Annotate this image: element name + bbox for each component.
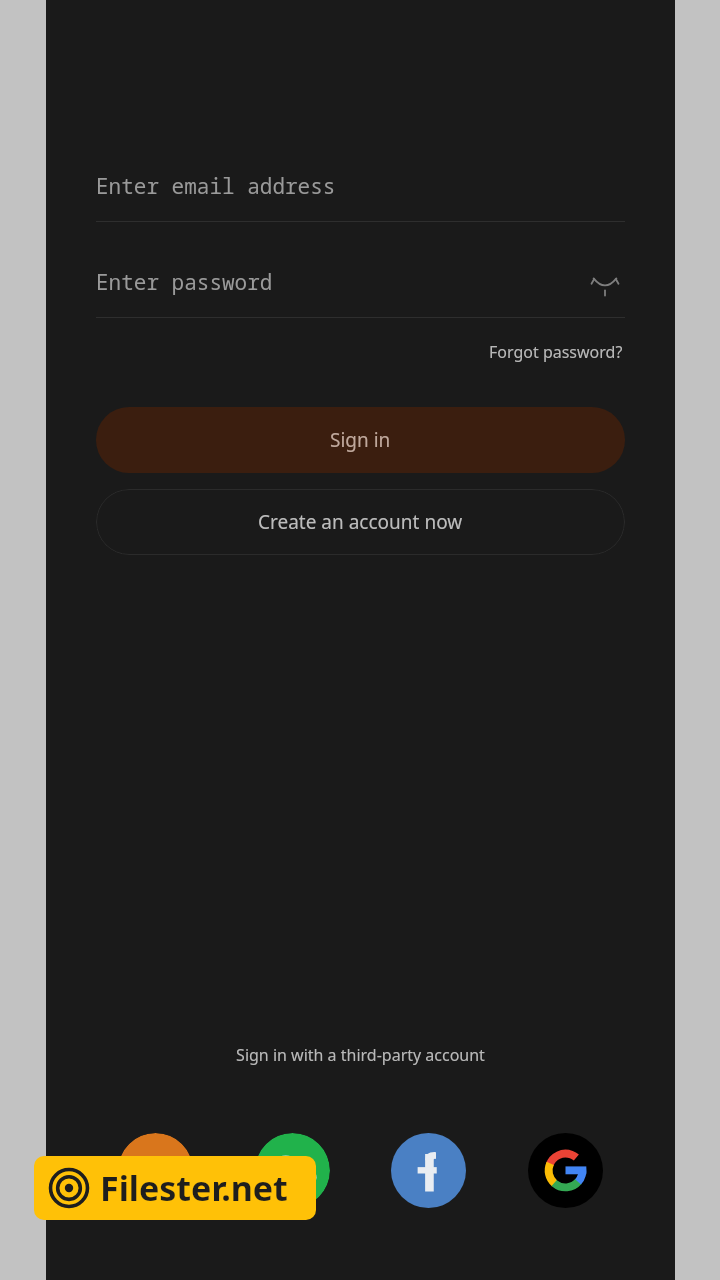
staticText: Sign in with a third-party account [236, 1044, 485, 1066]
staticText: Enter password [96, 268, 273, 297]
button[interactable]: Sign in with Reddit [118, 1133, 193, 1208]
button[interactable]: Create an account now [96, 489, 625, 555]
staticText: Forgot password? [489, 341, 623, 363]
staticText: Enter email address [96, 172, 336, 201]
staticText: Filester.net [100, 1165, 288, 1211]
staticText: Create an account now [258, 509, 463, 535]
button[interactable]: Sign in [96, 407, 625, 473]
button[interactable]: Enter email address [96, 163, 625, 209]
button[interactable]: Sign in with Facebook [391, 1133, 466, 1208]
button[interactable]: Enter password [96, 259, 625, 305]
button[interactable]: Sign in with Google [528, 1133, 603, 1208]
staticText: Sign in [330, 427, 391, 453]
button[interactable]: Show password [585, 262, 625, 302]
button[interactable]: Sign in with WeChat [255, 1133, 330, 1208]
button[interactable]: Forgot password? [487, 337, 625, 367]
